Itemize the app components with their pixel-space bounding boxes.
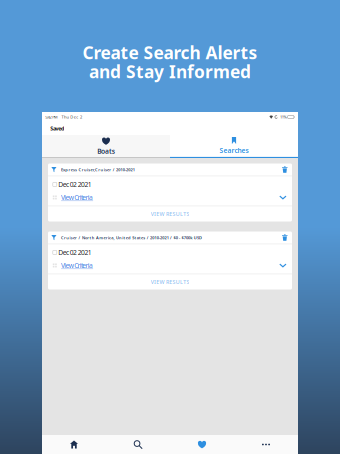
button[interactable]: Boats xyxy=(42,135,170,158)
button[interactable]: View Criteria xyxy=(57,261,93,270)
staticText: View Criteria xyxy=(61,193,93,202)
staticText: 5:42 PM xyxy=(45,114,58,120)
staticText: Create Search Alerts xyxy=(82,41,257,64)
button[interactable]: Expand criteria xyxy=(278,260,288,270)
button[interactable]: VIEW RESULTS xyxy=(48,274,292,289)
staticText: Dec 02 2021 xyxy=(58,248,92,257)
staticText: and Stay Informed xyxy=(89,60,251,83)
button[interactable]: Search xyxy=(106,435,170,454)
staticText: View Criteria xyxy=(61,261,93,270)
button[interactable]: Saved xyxy=(170,435,234,454)
staticText: Dec 02 2021 xyxy=(58,180,92,189)
staticText: Express Cruiser,Cruiser / 2010-2021 xyxy=(61,167,135,172)
button[interactable]: Express Cruiser,Cruiser / 2010-2021 xyxy=(48,163,292,176)
button[interactable]: Expand criteria xyxy=(278,192,288,202)
staticText: Boats xyxy=(97,147,115,156)
staticText: Thu Dec 2 xyxy=(61,114,82,120)
button[interactable]: View Criteria xyxy=(57,193,93,202)
staticText: Saved xyxy=(50,125,64,132)
button[interactable]: Searches xyxy=(170,135,298,158)
staticText: VIEW RESULTS xyxy=(151,278,189,285)
button[interactable]: Home xyxy=(42,435,106,454)
staticText: Searches xyxy=(219,146,248,155)
button[interactable]: More xyxy=(234,435,298,454)
staticText: Cruiser / North America, United States /… xyxy=(61,235,202,240)
button[interactable]: VIEW RESULTS xyxy=(48,206,292,221)
button[interactable]: Cruiser / North America, United States /… xyxy=(48,231,292,244)
staticText: 11% xyxy=(280,114,286,120)
staticText: VIEW RESULTS xyxy=(151,210,189,217)
